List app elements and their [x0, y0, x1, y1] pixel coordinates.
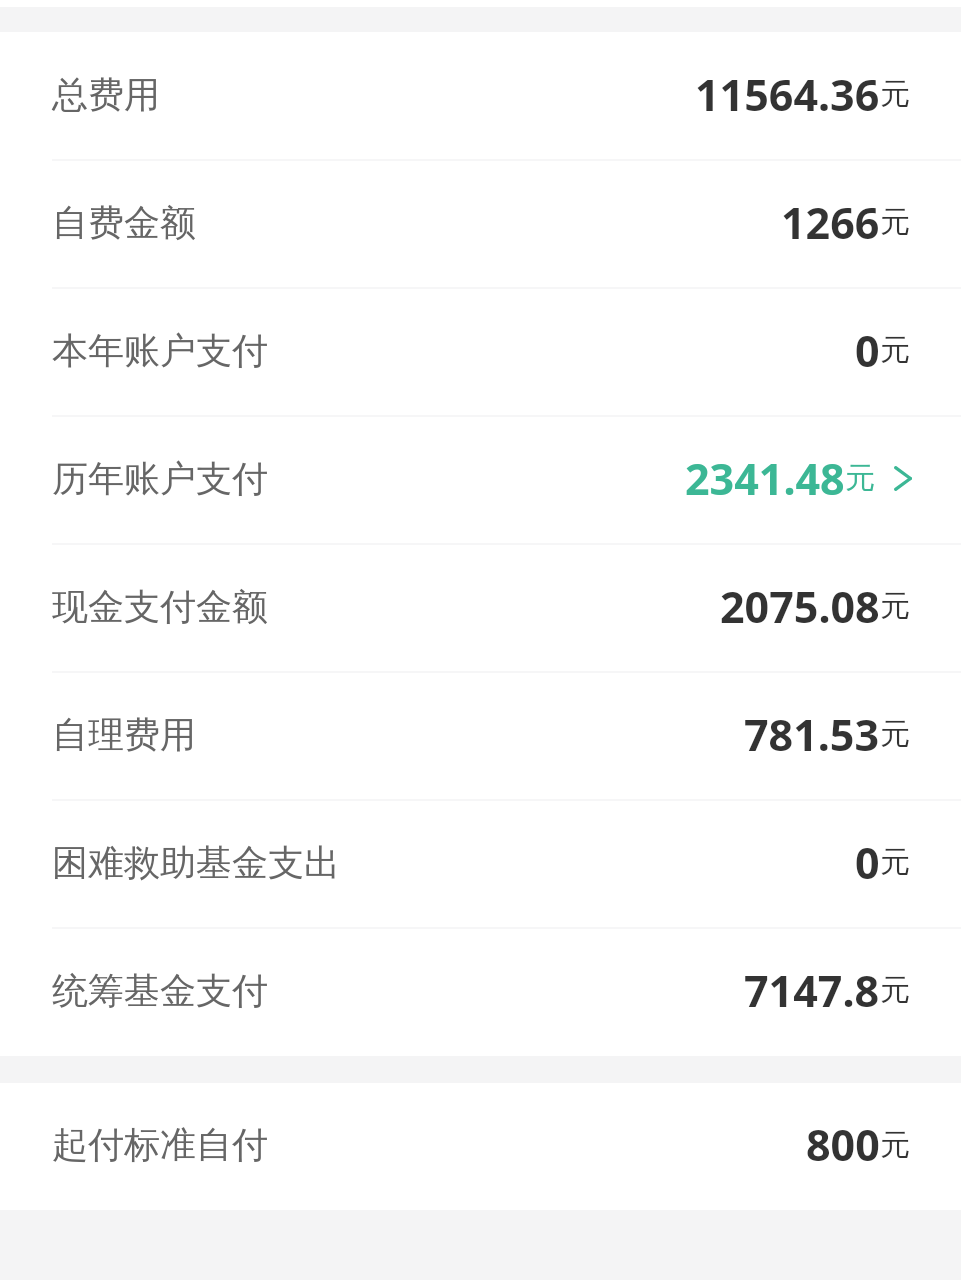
staticText: 自费金额 [52, 200, 196, 245]
staticText: 元 [880, 203, 910, 241]
staticText: 元 [880, 971, 910, 1009]
button[interactable]: 自费金额 [0, 160, 961, 288]
staticText: 0 [855, 833, 880, 892]
staticText: 元 [880, 587, 910, 625]
button[interactable]: 历年账户支付 [0, 416, 961, 544]
staticText: 困难救助基金支出 [52, 840, 340, 885]
staticText: 历年账户支付 [52, 456, 268, 501]
staticText: 自理费用 [52, 712, 196, 757]
staticText: 现金支付金额 [52, 584, 268, 629]
staticText: 7147.8 [744, 961, 880, 1020]
other: View details [894, 466, 912, 491]
button[interactable]: 统筹基金支付 [0, 928, 961, 1056]
button[interactable]: 现金支付金额 [0, 544, 961, 672]
staticText: 1266 [781, 193, 880, 252]
staticText: 统筹基金支付 [52, 968, 268, 1013]
staticText: 2341.48 [685, 449, 845, 508]
staticText: 781.53 [744, 705, 880, 764]
staticText: 11564.36 [695, 65, 880, 124]
staticText: 2075.08 [720, 577, 880, 636]
staticText: 元 [880, 75, 910, 113]
staticText: 本年账户支付 [52, 328, 268, 373]
staticText: 800 [806, 1115, 880, 1174]
button[interactable]: 困难救助基金支出 [0, 800, 961, 928]
button[interactable]: 起付标准自付 [0, 1083, 961, 1210]
staticText: 元 [845, 459, 875, 497]
staticText: 元 [880, 331, 910, 369]
staticText: 总费用 [52, 72, 160, 117]
staticText: 起付标准自付 [52, 1122, 268, 1167]
staticText: 元 [880, 1126, 910, 1164]
button[interactable]: 总费用 [0, 32, 961, 160]
staticText: 元 [880, 843, 910, 881]
staticText: 元 [880, 715, 910, 753]
button[interactable]: 本年账户支付 [0, 288, 961, 416]
staticText: 0 [855, 321, 880, 380]
button[interactable]: 自理费用 [0, 672, 961, 800]
